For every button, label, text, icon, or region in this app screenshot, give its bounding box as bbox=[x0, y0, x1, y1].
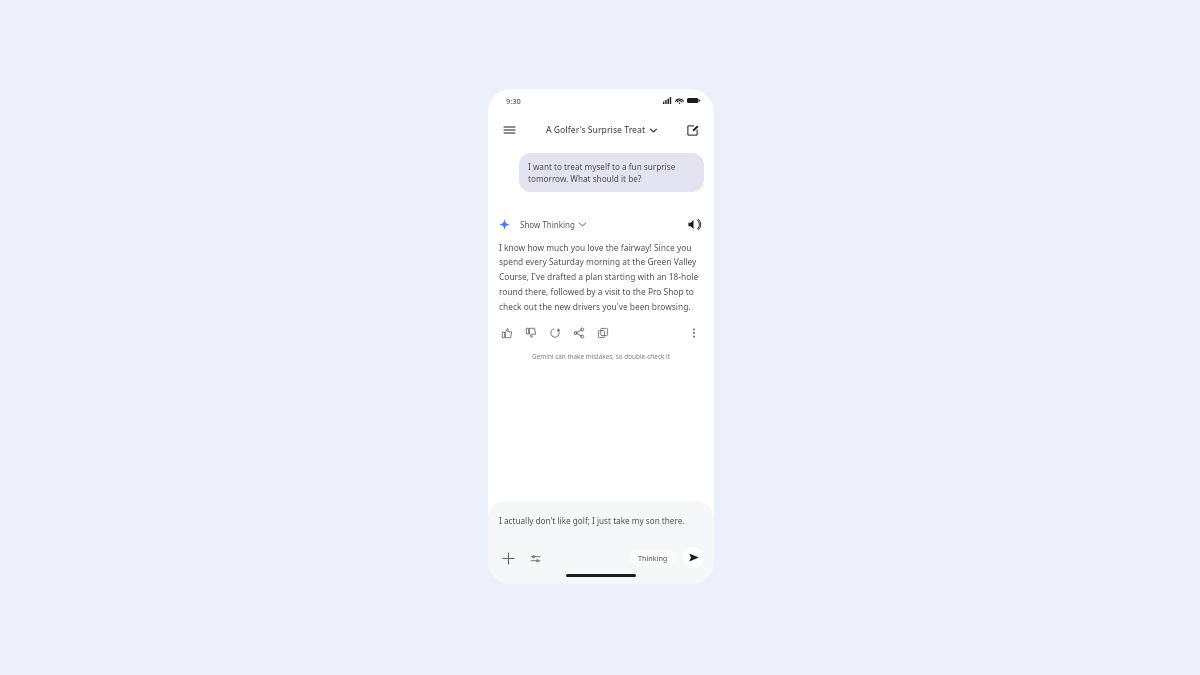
button[interactable]: New chat bbox=[681, 119, 703, 141]
button[interactable]: Thinking bbox=[629, 549, 677, 566]
staticText: 9:30 bbox=[506, 96, 521, 106]
button[interactable]: Show Thinking bbox=[517, 216, 589, 233]
staticText: I know how much you love the fairway! Si… bbox=[499, 242, 702, 313]
button[interactable]: Regenerate bbox=[547, 325, 563, 341]
button[interactable]: More options bbox=[686, 325, 702, 341]
button[interactable]: I want to treat myself to a fun surprise… bbox=[519, 153, 704, 192]
staticText: A Golfer's Surprise Treat bbox=[546, 124, 646, 136]
button[interactable]: A Golfer's Surprise Treat bbox=[542, 121, 661, 139]
button[interactable]: Tools bbox=[525, 548, 545, 568]
button[interactable]: Dislike bbox=[523, 325, 539, 341]
button[interactable]: Share bbox=[571, 325, 587, 341]
button[interactable]: Send bbox=[683, 547, 704, 568]
button[interactable]: Add attachment bbox=[498, 548, 518, 568]
staticText: Thinking bbox=[638, 553, 668, 563]
staticText: I want to treat myself to a fun surprise… bbox=[528, 161, 695, 184]
staticText: Show Thinking bbox=[520, 219, 575, 230]
button[interactable]: Read aloud bbox=[684, 215, 702, 233]
button[interactable]: Copy bbox=[595, 325, 611, 341]
staticText: Gemini can make mistakes, so double-chec… bbox=[488, 352, 714, 361]
button[interactable]: Like bbox=[499, 325, 515, 341]
button[interactable]: Menu bbox=[498, 119, 520, 141]
button[interactable]: I actually don't like golf; I just take … bbox=[499, 515, 685, 526]
